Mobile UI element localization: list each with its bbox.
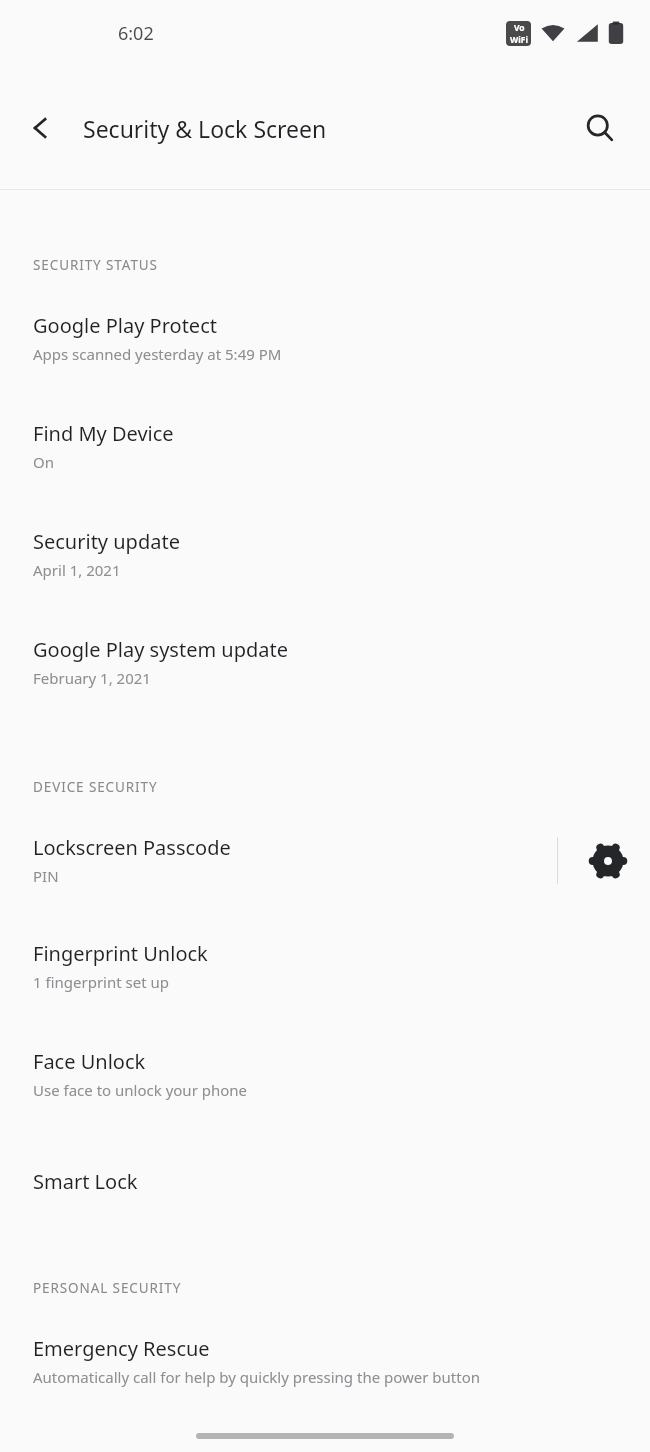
- button[interactable]: Lockscreen passcode settings: [586, 839, 630, 883]
- staticText: 1 fingerprint set up: [33, 972, 169, 992]
- button[interactable]: Smart Lock: [0, 1156, 650, 1207]
- staticText: 6:02: [118, 21, 154, 46]
- button[interactable]: Back: [16, 103, 66, 153]
- button[interactable]: Face Unlock: [0, 1036, 650, 1112]
- staticText: Face Unlock: [33, 1048, 146, 1075]
- staticText: Emergency Rescue: [33, 1335, 210, 1362]
- staticText: On: [33, 452, 54, 472]
- staticText: PERSONAL SECURITY: [33, 1279, 182, 1297]
- staticText: Google Play system update: [33, 636, 289, 663]
- staticText: DEVICE SECURITY: [33, 778, 158, 796]
- staticText: WiFi: [510, 34, 528, 46]
- staticText: Google Play Protect: [33, 312, 217, 339]
- button[interactable]: Search: [574, 102, 626, 154]
- staticText: Security & Lock Screen: [83, 113, 574, 144]
- staticText: Use face to unlock your phone: [33, 1080, 248, 1100]
- button[interactable]: Fingerprint Unlock: [0, 928, 650, 1004]
- staticText: Apps scanned yesterday at 5:49 PM: [33, 344, 282, 364]
- staticText: Smart Lock: [33, 1168, 138, 1195]
- staticText: PIN: [33, 866, 59, 886]
- staticText: Automatically call for help by quickly p…: [33, 1367, 481, 1387]
- button[interactable]: Security update: [0, 516, 650, 592]
- staticText: SECURITY STATUS: [33, 256, 158, 274]
- staticText: February 1, 2021: [33, 668, 151, 688]
- button[interactable]: Find My Device: [0, 408, 650, 484]
- staticText: Find My Device: [33, 420, 174, 447]
- button[interactable]: Emergency Rescue: [0, 1323, 650, 1399]
- staticText: Fingerprint Unlock: [33, 940, 208, 967]
- button[interactable]: Google Play Protect: [0, 300, 650, 376]
- staticText: Security update: [33, 528, 180, 555]
- staticText: Lockscreen Passcode: [33, 834, 231, 861]
- staticText: Vo: [514, 22, 525, 34]
- button[interactable]: Google Play system update: [0, 624, 650, 700]
- button[interactable]: Lockscreen Passcode: [0, 822, 650, 898]
- staticText: April 1, 2021: [33, 560, 121, 580]
